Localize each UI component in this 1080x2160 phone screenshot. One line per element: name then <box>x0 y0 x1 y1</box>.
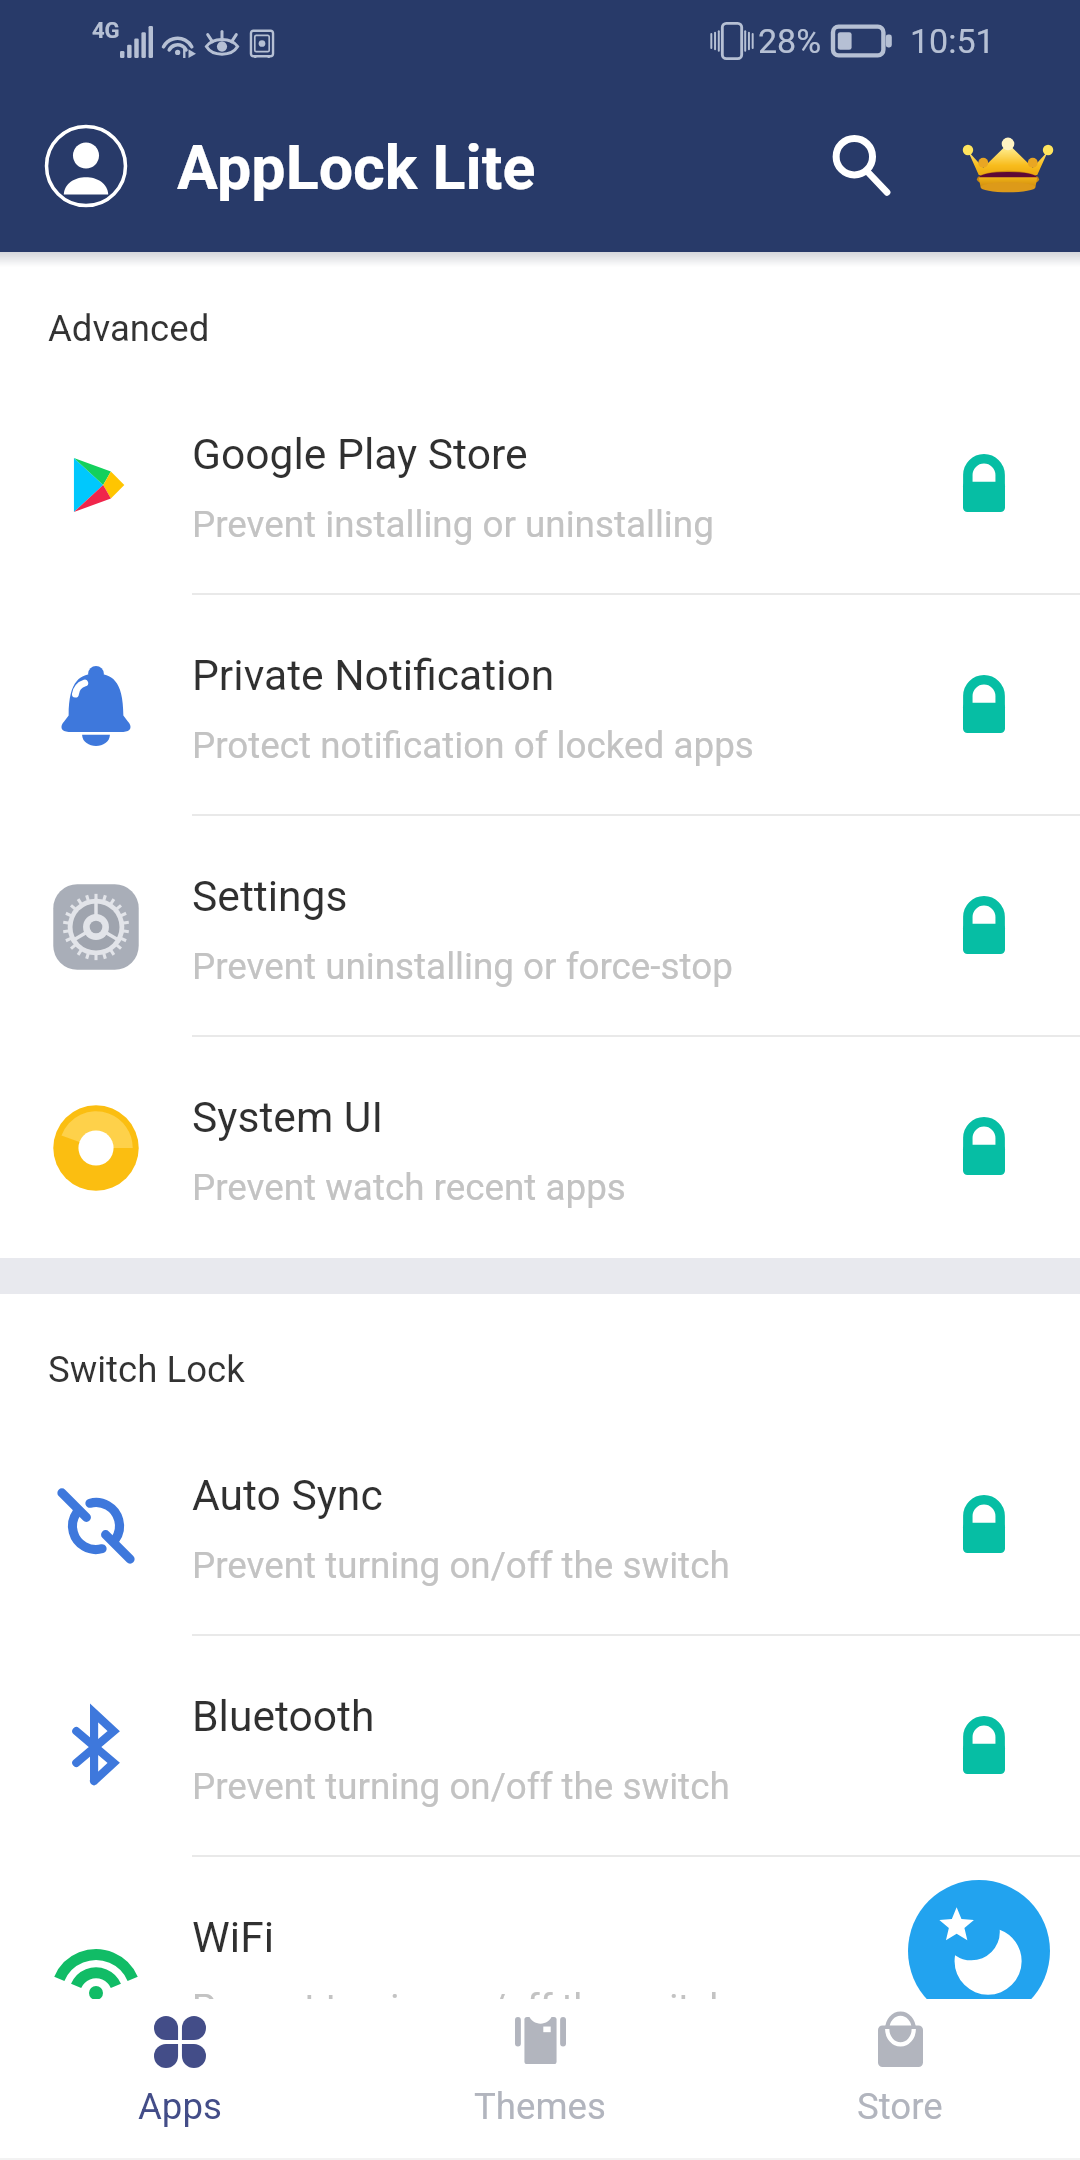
button[interactable]: Bluetooth <box>0 1636 1080 1857</box>
button[interactable]: Private Notification <box>0 595 1080 816</box>
staticText: Prevent uninstalling or force-stop <box>192 945 733 988</box>
button[interactable]: Profile <box>44 124 128 208</box>
staticText: Prevent watch recent apps <box>192 1166 626 1209</box>
staticText: Apps <box>138 2085 222 2128</box>
staticText: Auto Sync <box>192 1470 383 1520</box>
button[interactable]: Night mode <box>908 1880 1050 2022</box>
staticText: System UI <box>192 1092 384 1142</box>
staticText: Settings <box>192 871 348 921</box>
button[interactable]: Search <box>813 116 913 216</box>
button[interactable]: WiFi <box>0 1857 1080 2078</box>
staticText: 4G <box>92 18 120 44</box>
staticText: Prevent turning on/off the switch <box>192 1765 730 1808</box>
button[interactable]: Apps <box>0 1999 360 2160</box>
staticText: 10:51 <box>910 21 995 61</box>
staticText: Protect notification of locked apps <box>192 724 754 767</box>
staticText: Advanced <box>48 307 210 350</box>
button[interactable]: Store <box>720 1999 1080 2160</box>
staticText: Bluetooth <box>192 1691 375 1741</box>
staticText: Store <box>857 2085 943 2128</box>
button[interactable]: Google Play Store <box>0 374 1080 595</box>
staticText: Prevent turning on/off the switch <box>192 1544 730 1587</box>
button[interactable]: System UI <box>0 1037 1080 1258</box>
staticText: WiFi <box>192 1912 275 1962</box>
staticText: Google Play Store <box>192 429 528 479</box>
staticText: Private Notification <box>192 650 555 700</box>
button[interactable]: VIP subscription <box>955 116 1061 216</box>
button[interactable]: Auto Sync <box>0 1415 1080 1636</box>
staticText: Switch Lock <box>48 1348 245 1391</box>
button[interactable]: Themes <box>360 1999 720 2160</box>
staticText: AppLock Lite <box>177 132 536 203</box>
staticText: Prevent installing or uninstalling <box>192 503 714 546</box>
staticText: 28% <box>758 21 822 61</box>
staticText: Prevent turning on/off the switch <box>192 1986 730 2029</box>
staticText: Themes <box>474 2085 606 2128</box>
button[interactable]: Settings <box>0 816 1080 1037</box>
